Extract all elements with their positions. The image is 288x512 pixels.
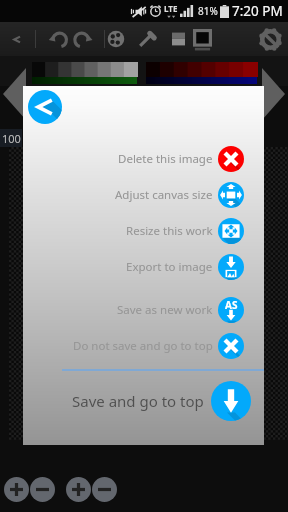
- button[interactable]: Zoom out: [92, 477, 117, 502]
- button[interactable]: Export to image: [23, 249, 264, 285]
- button[interactable]: Current colour: [188, 22, 216, 56]
- button[interactable]: Palette: [102, 22, 130, 56]
- staticText: Adjust canvas size: [115, 187, 213, 203]
- staticText: Save and go to top: [72, 391, 204, 411]
- staticText: Export to image: [126, 259, 213, 275]
- staticText: Do not save and go to top: [73, 338, 213, 354]
- staticText: 7:20 PM: [232, 2, 283, 20]
- button[interactable]: Back: [28, 90, 62, 124]
- button[interactable]: Zoom in: [66, 477, 91, 502]
- staticText: 100: [2, 131, 21, 146]
- staticText: Delete this image: [118, 151, 213, 167]
- button[interactable]: Delete this image: [23, 141, 264, 177]
- staticText: Save as new work: [117, 302, 213, 318]
- staticText: LTE: [164, 3, 178, 14]
- button[interactable]: Eraser: [166, 22, 190, 56]
- button[interactable]: Tools: [255, 24, 285, 54]
- staticText: Resize this work: [126, 223, 213, 239]
- staticText: AS: [225, 298, 238, 312]
- staticText: 81%: [198, 4, 218, 18]
- button[interactable]: Back: [1, 22, 31, 56]
- button[interactable]: Undo: [43, 22, 73, 56]
- button[interactable]: Colour picker: [133, 22, 161, 56]
- button[interactable]: Resize this work: [23, 213, 264, 249]
- button[interactable]: Zoom in: [4, 477, 29, 502]
- button[interactable]: Zoom out: [30, 477, 55, 502]
- button[interactable]: Save and go to top: [23, 375, 264, 427]
- button[interactable]: Adjust canvas size: [23, 177, 264, 213]
- button[interactable]: Redo: [65, 22, 95, 56]
- button[interactable]: Save as new work: [23, 292, 264, 328]
- button[interactable]: Do not save and go to top: [23, 328, 264, 364]
